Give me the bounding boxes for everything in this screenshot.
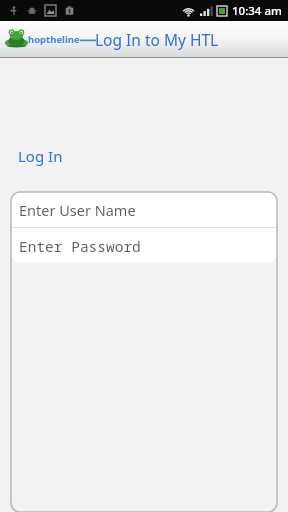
button[interactable]: Enter Password [11,228,277,263]
button[interactable]: Log In [15,144,66,168]
staticText: 10:34 am [232,3,282,19]
other: Hoptheline logo [5,29,28,50]
button[interactable]: Enter User Name [11,192,277,227]
staticText: Enter User Name [19,200,136,220]
staticText: Log In to My HTL [95,29,219,50]
staticText: Enter Password [19,236,141,256]
staticText: Log In [18,146,63,166]
staticText: hoptheline [28,33,80,46]
